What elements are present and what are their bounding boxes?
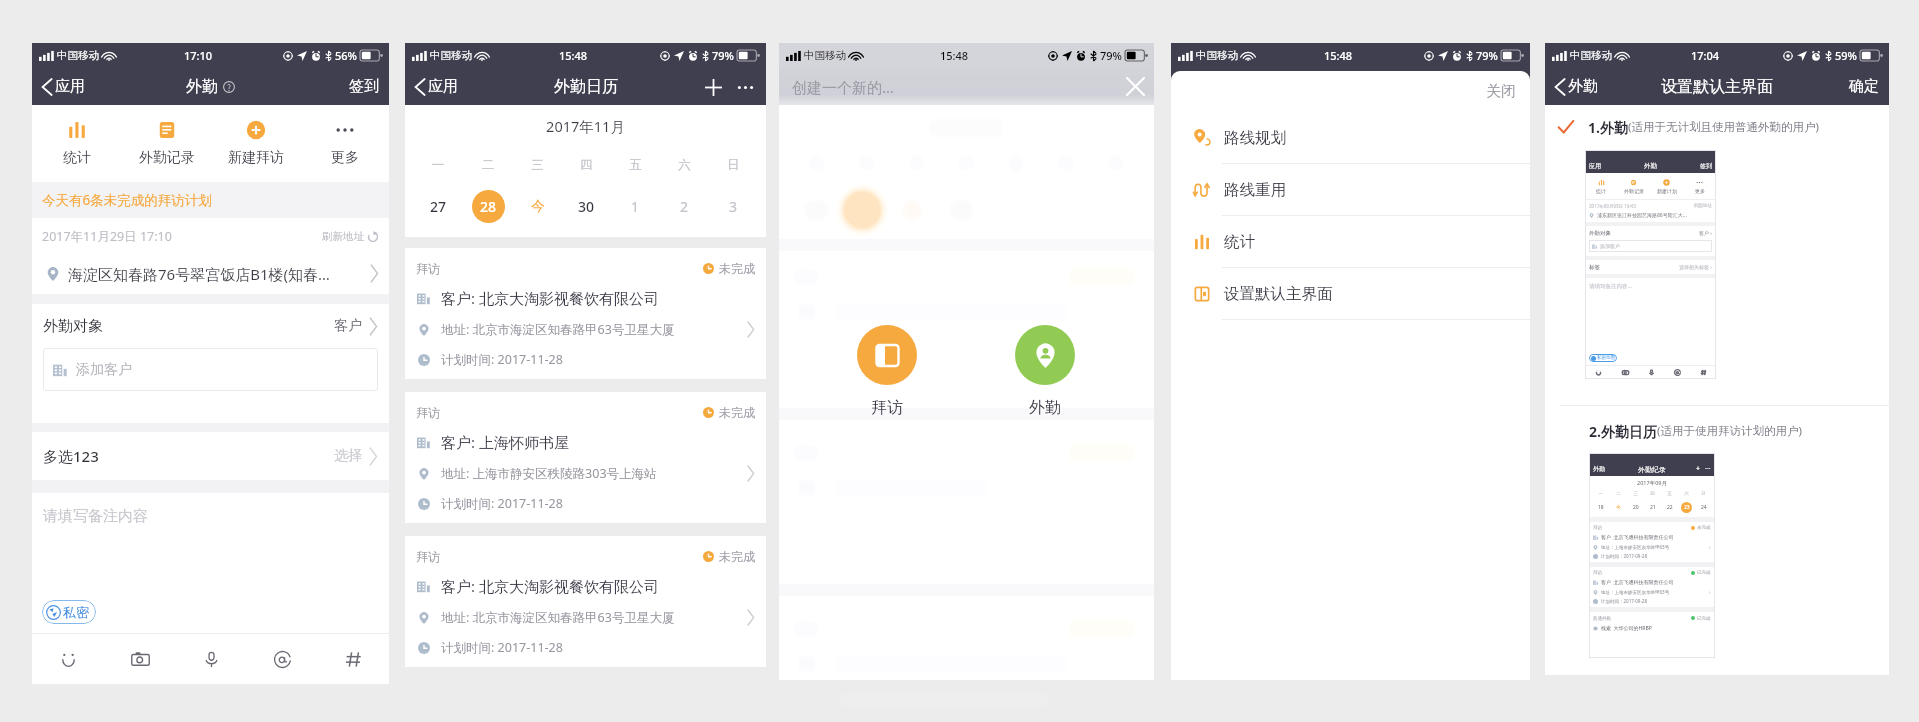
staticText: 2017年09月05日 10:43 <box>1589 203 1636 209</box>
staticText: 15:48 <box>559 48 588 63</box>
button[interactable]: 1 <box>611 190 660 223</box>
button[interactable]: 路线规划 <box>1171 112 1530 164</box>
button[interactable]: Emoji <box>32 634 104 684</box>
staticText: 关闭 <box>1486 82 1516 101</box>
staticText: 客户: 北京大淘影视餐饮有限公司 <box>441 288 659 308</box>
staticText: 地址: 北京市海淀区知春路甲63号卫星大厦 <box>441 609 742 626</box>
staticText: 外勤记录 <box>1624 188 1644 194</box>
button[interactable]: Close <box>1117 68 1154 105</box>
button[interactable]: 2 <box>660 190 709 223</box>
staticText: 五 <box>611 157 660 173</box>
staticText: 四 <box>1644 491 1661 497</box>
staticText: 外勤 <box>1029 398 1061 418</box>
staticText: 五 <box>1661 491 1678 497</box>
staticText: 选择相关标签 › <box>1679 264 1712 271</box>
staticText: 统计 <box>1596 188 1606 194</box>
staticText: 多选123 <box>43 446 99 466</box>
staticText: 未完成 <box>719 405 755 420</box>
staticText: (适用于无计划且使用普通外勤的用户) <box>1628 119 1819 135</box>
staticText: 拜访 <box>416 549 440 564</box>
staticText: 15:48 <box>940 48 969 63</box>
staticText: 1.外勤 <box>1588 118 1628 137</box>
button[interactable]: Camera <box>104 634 176 684</box>
staticText: › <box>1709 589 1711 595</box>
button[interactable]: 确定 <box>1849 68 1879 105</box>
staticText: 计划时间: 2017-11-28 <box>441 495 563 512</box>
button[interactable]: 28 <box>472 190 505 223</box>
staticText: 18 <box>1598 504 1604 511</box>
staticText: 2017年11月29日 17:10 <box>42 228 172 245</box>
staticText: 应用 <box>428 77 458 96</box>
staticText: 统计 <box>63 149 91 167</box>
button[interactable]: 外勤记录 <box>122 105 211 182</box>
staticText: 17:04 <box>1691 48 1720 63</box>
staticText: 四 <box>562 157 611 173</box>
button[interactable]: 新建拜访 <box>211 105 300 182</box>
staticText: 三 <box>1627 491 1644 497</box>
button[interactable]: Add <box>700 74 726 100</box>
button[interactable]: 拜访 <box>405 536 766 667</box>
staticText: 地址: 上海市静安区秩陵路303号上海站 <box>441 465 742 482</box>
button[interactable]: 外勤 <box>1015 325 1075 418</box>
button[interactable]: 关闭 <box>1486 71 1516 112</box>
button[interactable]: 应用 <box>414 68 766 105</box>
button[interactable]: 30 <box>562 190 611 223</box>
button[interactable]: 签到 <box>349 68 379 105</box>
staticText: 2017年09月 <box>1589 479 1715 487</box>
button[interactable]: 今 <box>513 190 562 223</box>
button[interactable]: 设置默认主界面 <box>1171 268 1530 320</box>
staticText: 中国移动 <box>1196 49 1238 62</box>
button[interactable]: Mention <box>247 634 318 684</box>
button[interactable]: 添加客户 <box>43 348 378 391</box>
staticText: 79% <box>1100 48 1122 63</box>
button[interactable]: 统计 <box>1171 216 1530 268</box>
button[interactable]: 外勤 <box>1554 68 1889 105</box>
button[interactable]: Voice <box>176 634 247 684</box>
staticText: 79% <box>1476 48 1498 63</box>
staticText: 日 <box>709 157 758 173</box>
other: Help <box>223 81 235 93</box>
staticText: 24 <box>1701 504 1707 511</box>
staticText: 刷新地址 <box>1694 203 1712 209</box>
button[interactable]: 拜访 <box>405 248 766 379</box>
staticText: 56% <box>335 48 357 63</box>
button[interactable]: More <box>732 74 758 100</box>
button[interactable]: 今天有6条未完成的拜访计划 <box>32 182 389 218</box>
button[interactable]: 路线重用 <box>1171 164 1530 216</box>
button[interactable]: 拜访 <box>405 392 766 523</box>
staticText: 21 <box>1650 504 1656 511</box>
staticText: 2017年11月 <box>405 116 766 136</box>
staticText: 外勤对象 <box>43 317 103 336</box>
staticText: 选择 <box>334 447 362 465</box>
button[interactable]: 更多 <box>300 105 389 182</box>
button[interactable]: 私密 <box>46 600 89 624</box>
button[interactable]: 外勤对象 <box>43 304 378 348</box>
staticText: 日 <box>1695 491 1712 497</box>
staticText: 79% <box>712 48 734 63</box>
button[interactable]: 多选123 <box>43 432 378 480</box>
button[interactable]: 统计 <box>32 105 122 182</box>
staticText: 外勤记录 <box>139 149 195 167</box>
button[interactable]: 应用 <box>41 68 389 105</box>
staticText: 计划时间: 2017-11-28 <box>441 351 563 368</box>
button[interactable]: 3 <box>709 190 758 223</box>
button[interactable]: Tag <box>318 634 389 684</box>
staticText: 六 <box>1678 491 1695 497</box>
staticText: 三 <box>513 157 562 173</box>
button[interactable]: 拜访 <box>857 325 917 418</box>
staticText: 20 <box>1633 504 1639 511</box>
staticText: 拜访 <box>1593 570 1602 576</box>
staticText: 私密范围 <box>1597 355 1615 361</box>
button[interactable]: 海淀区知春路76号翠宫饭店B1楼(知春… <box>42 253 379 294</box>
staticText: 外勤 <box>186 77 218 97</box>
staticText: 已完成 <box>1697 616 1711 622</box>
staticText: 新建计划 <box>1657 188 1677 194</box>
staticText: 更多 <box>1695 188 1705 194</box>
button[interactable]: 27 <box>413 190 463 223</box>
staticText: 1 <box>631 197 640 216</box>
staticText: 3 <box>729 197 738 216</box>
staticText: 拜访 <box>1593 525 1602 531</box>
staticText: 签到 <box>349 77 379 96</box>
staticText: 外勤 <box>1568 77 1598 96</box>
staticText: 2.外勤日历 <box>1589 422 1657 441</box>
